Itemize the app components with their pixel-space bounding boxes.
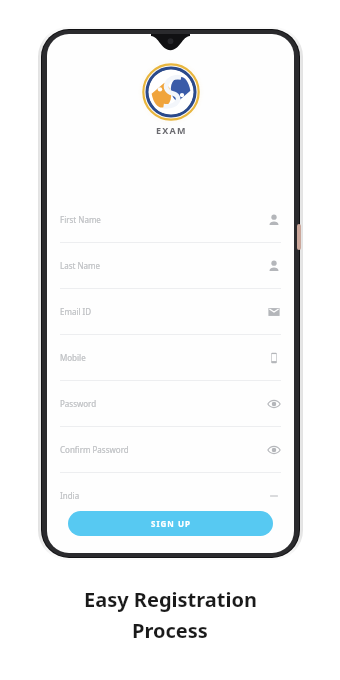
staticText: Password bbox=[60, 398, 267, 409]
staticText: Process bbox=[132, 617, 208, 644]
staticText: Last Name bbox=[60, 260, 267, 271]
staticText: First Name bbox=[60, 214, 267, 225]
button[interactable]: Last Name bbox=[60, 243, 281, 289]
button[interactable]: Password bbox=[60, 381, 281, 427]
staticText: EXAM bbox=[156, 124, 187, 136]
staticText: Email ID bbox=[60, 306, 267, 317]
button[interactable]: Confirm Password bbox=[60, 427, 281, 473]
button[interactable]: India bbox=[60, 473, 281, 518]
staticText: Confirm Password bbox=[60, 444, 267, 455]
staticText: Easy Registration bbox=[84, 586, 257, 613]
button[interactable]: Email ID bbox=[60, 289, 281, 335]
staticText: India bbox=[60, 490, 267, 501]
staticText: Mobile bbox=[60, 352, 267, 363]
staticText: SIGN UP bbox=[151, 518, 191, 529]
button[interactable]: SIGN UP bbox=[68, 511, 273, 536]
button[interactable]: First Name bbox=[60, 197, 281, 243]
button[interactable]: Mobile bbox=[60, 335, 281, 381]
